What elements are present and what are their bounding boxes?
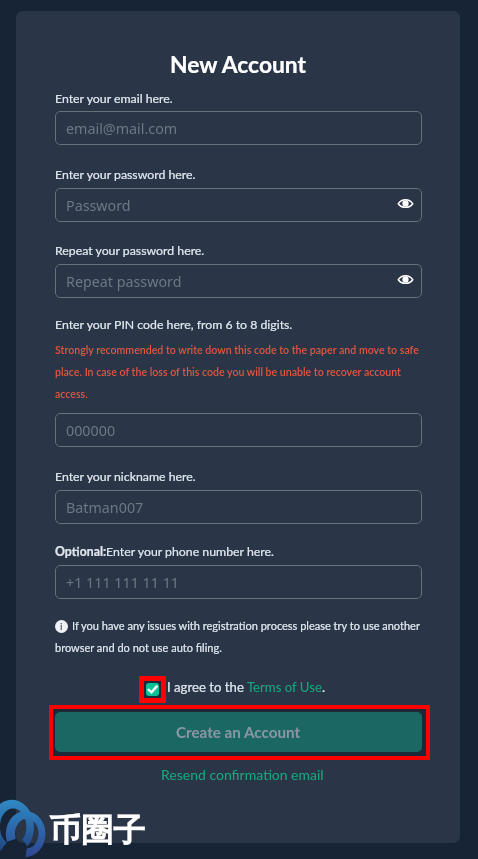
button[interactable]: Password (55, 188, 422, 222)
button[interactable]: +1 111 111 11 11 (55, 565, 422, 599)
button[interactable]: I agree to the Terms of Use. (167, 677, 326, 697)
staticText: I agree to the Terms of Use. (167, 679, 326, 695)
staticText: email@mail.com (66, 119, 178, 138)
staticText: browser and do not use auto filing. (55, 641, 222, 654)
staticText: Password (66, 196, 131, 215)
staticText: If you have any issues with registration… (72, 619, 420, 632)
staticText: Repeat password (66, 272, 182, 291)
staticText: Enter your password here. (55, 167, 196, 182)
button[interactable]: I agree to the Terms of Use (146, 683, 159, 696)
staticText: Repeat your password here. (55, 243, 205, 258)
staticText: +1 111 111 11 11 (66, 573, 180, 592)
staticText: Optional:Enter your phone number here. (55, 544, 274, 559)
button[interactable]: email@mail.com (55, 111, 422, 145)
staticText: Create an Account (176, 723, 301, 741)
staticText: i (60, 621, 63, 632)
button[interactable]: Show password (394, 268, 416, 290)
staticText: Resend confirmation email (161, 766, 324, 783)
staticText: Batman007 (66, 498, 144, 517)
staticText: 000000 (66, 421, 116, 440)
staticText: Strongly recommended to write down this … (55, 344, 424, 400)
button[interactable]: Repeat password (55, 264, 422, 298)
staticText: 币圈子 (49, 810, 145, 850)
button[interactable]: Create an Account (55, 712, 422, 752)
button[interactable]: Resend confirmation email (20, 766, 464, 783)
staticText: Enter your email here. (55, 91, 173, 106)
button[interactable]: Show password (394, 192, 416, 214)
button[interactable]: Batman007 (55, 490, 422, 524)
button[interactable]: 000000 (55, 413, 422, 447)
staticText: New Account (16, 50, 460, 77)
staticText: Enter your nickname here. (55, 469, 196, 484)
staticText: Enter your PIN code here, from 6 to 8 di… (55, 317, 293, 332)
